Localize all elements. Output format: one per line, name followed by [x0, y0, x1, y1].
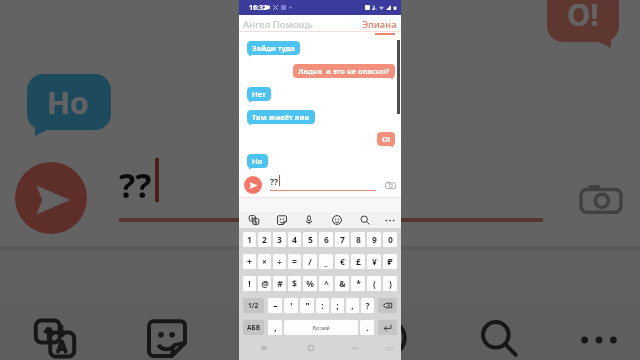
button[interactable]: Search	[443, 306, 555, 360]
staticText: ^	[324, 278, 329, 290]
button[interactable]: Voice input	[295, 212, 323, 228]
button[interactable]: Keyboard switcher	[377, 336, 401, 360]
button[interactable]: 1	[243, 232, 256, 247]
staticText: )	[389, 278, 392, 290]
staticText: АБВ	[247, 323, 261, 332]
staticText: 4	[292, 234, 297, 246]
button[interactable]: £	[351, 254, 365, 269]
staticText: О!	[567, 0, 599, 34]
button[interactable]: $	[288, 276, 301, 291]
button[interactable]: О!	[377, 132, 395, 146]
staticText: 5	[308, 234, 313, 246]
button[interactable]: 3	[273, 232, 286, 247]
button[interactable]: ,	[346, 298, 359, 313]
button[interactable]: ÷	[273, 254, 286, 269]
button[interactable]: "	[300, 298, 314, 313]
staticText: ;	[336, 300, 339, 312]
button[interactable]: 9	[367, 232, 381, 247]
button[interactable]: &	[335, 276, 349, 291]
button[interactable]: Recents	[239, 336, 289, 360]
button[interactable]: ^	[319, 276, 333, 291]
button[interactable]: Enter	[378, 320, 397, 335]
button[interactable]: Но	[27, 74, 111, 130]
button[interactable]: Voice input	[219, 306, 331, 360]
button[interactable]: Clipboard	[239, 212, 268, 228]
staticText: Там живёт лия	[252, 112, 310, 122]
button[interactable]: @	[258, 276, 271, 291]
staticText: ??	[270, 176, 279, 188]
button[interactable]: 4	[288, 232, 301, 247]
button[interactable]: Зайди туда	[247, 41, 300, 55]
button[interactable]: =	[288, 254, 301, 269]
button[interactable]: Camera	[571, 170, 627, 226]
staticText: Но	[47, 82, 91, 122]
staticText: @	[261, 278, 269, 290]
staticText: =	[292, 256, 297, 268]
button[interactable]: ₽	[383, 254, 397, 269]
button[interactable]: 0	[383, 232, 397, 247]
button[interactable]: Там живёт лия	[247, 110, 315, 124]
button[interactable]: %	[303, 276, 317, 291]
button[interactable]: _	[319, 254, 333, 269]
button[interactable]: 2	[258, 232, 271, 247]
button[interactable]: Но	[247, 154, 268, 168]
staticText: !	[248, 278, 251, 290]
button[interactable]: Русский	[284, 320, 358, 335]
staticText: 6	[324, 234, 329, 246]
button[interactable]: –	[268, 298, 282, 313]
button[interactable]: ;	[331, 298, 344, 313]
button[interactable]: ?	[361, 298, 374, 313]
staticText: '	[290, 300, 293, 312]
staticText: .	[366, 322, 369, 334]
button[interactable]: ×	[258, 254, 271, 269]
button[interactable]: ¥	[367, 254, 381, 269]
button[interactable]: Emoji	[323, 212, 351, 228]
button[interactable]: Emoji	[331, 306, 443, 360]
button[interactable]: '	[284, 298, 298, 313]
button[interactable]: 7	[335, 232, 349, 247]
button[interactable]: Home	[289, 336, 333, 360]
button[interactable]: 1/2	[243, 298, 264, 313]
button[interactable]: (	[367, 276, 381, 291]
button[interactable]: )	[383, 276, 397, 291]
staticText: –	[273, 300, 278, 312]
button[interactable]: More options	[555, 306, 640, 360]
button[interactable]: More options	[379, 212, 401, 228]
button[interactable]: Backspace	[378, 298, 397, 313]
button[interactable]: Stickers	[111, 306, 219, 360]
button[interactable]: .	[360, 320, 374, 335]
staticText: ¥	[372, 256, 377, 268]
button[interactable]: ,	[268, 320, 282, 335]
staticText: Элиана	[362, 18, 397, 31]
staticText: %	[306, 278, 314, 290]
button[interactable]: !	[243, 276, 256, 291]
button[interactable]: #	[273, 276, 286, 291]
button[interactable]: Stickers	[268, 212, 295, 228]
button[interactable]: 8	[351, 232, 365, 247]
button[interactable]: Ангел Помощь	[239, 15, 317, 31]
button[interactable]: Нет	[247, 87, 271, 101]
button[interactable]: Camera	[383, 178, 397, 192]
button[interactable]: АБВ	[243, 320, 264, 335]
button[interactable]: Send	[15, 162, 87, 234]
button[interactable]: Search	[351, 212, 379, 228]
button[interactable]: *	[351, 276, 365, 291]
button[interactable]: €	[335, 254, 349, 269]
staticText: Русский	[312, 325, 330, 331]
staticText: +	[247, 256, 252, 268]
button[interactable]: 6	[319, 232, 333, 247]
staticText: $	[292, 278, 297, 290]
staticText: Ангел Помощь	[243, 18, 313, 31]
staticText: 9	[372, 234, 377, 246]
button[interactable]: Элиана	[358, 15, 401, 31]
button[interactable]: :	[316, 298, 329, 313]
button[interactable]: /	[303, 254, 317, 269]
button[interactable]: Clipboard	[0, 306, 111, 360]
button[interactable]: +	[243, 254, 256, 269]
staticText: €	[340, 256, 345, 268]
button[interactable]: О!	[547, 0, 619, 42]
button[interactable]: Send	[244, 176, 262, 194]
button[interactable]: 5	[303, 232, 317, 247]
button[interactable]: Ладно а это не опасно?	[293, 64, 395, 78]
